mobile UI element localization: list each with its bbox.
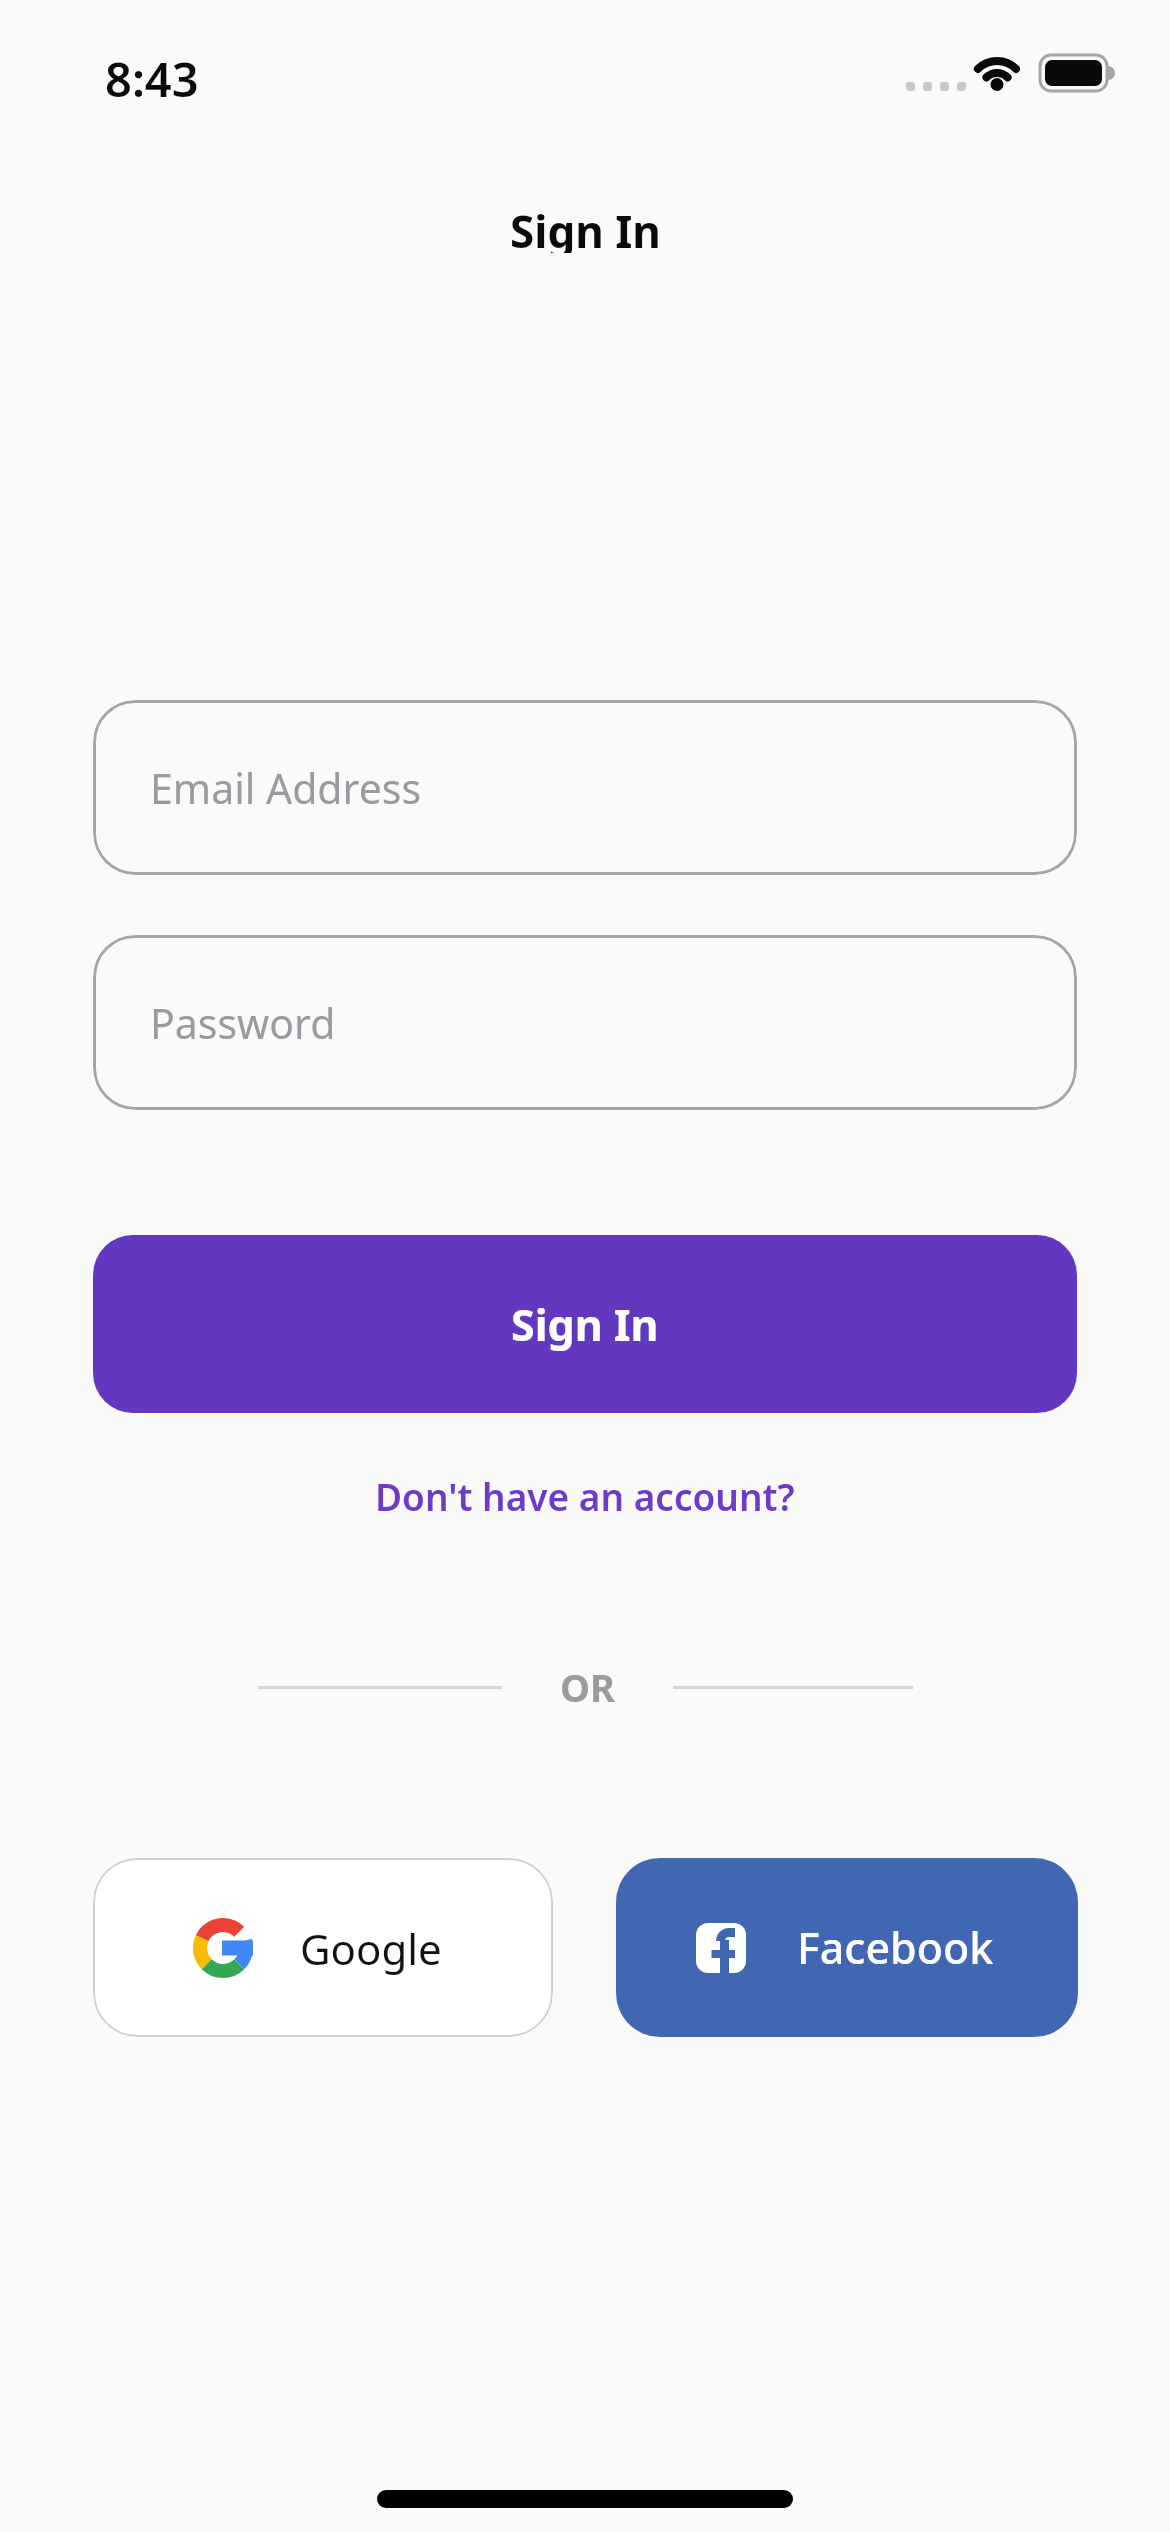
staticText: Email Address	[150, 760, 422, 816]
button[interactable]: Google	[93, 1858, 553, 2037]
button[interactable]: Sign In	[93, 1235, 1077, 1413]
staticText: Google	[300, 1920, 442, 1977]
staticText: Password	[150, 995, 336, 1051]
staticText: 8:43	[105, 47, 199, 99]
button[interactable]: Email Address	[93, 700, 1077, 875]
staticText: Sign In	[511, 1295, 659, 1354]
button[interactable]: Facebook	[616, 1858, 1078, 2037]
staticText: Sign In	[510, 201, 661, 253]
staticText: Facebook	[797, 1918, 994, 1977]
staticText: OR	[560, 1661, 615, 1713]
button[interactable]: Password	[93, 935, 1077, 1110]
button[interactable]: Don't have an account?	[375, 1471, 795, 1521]
